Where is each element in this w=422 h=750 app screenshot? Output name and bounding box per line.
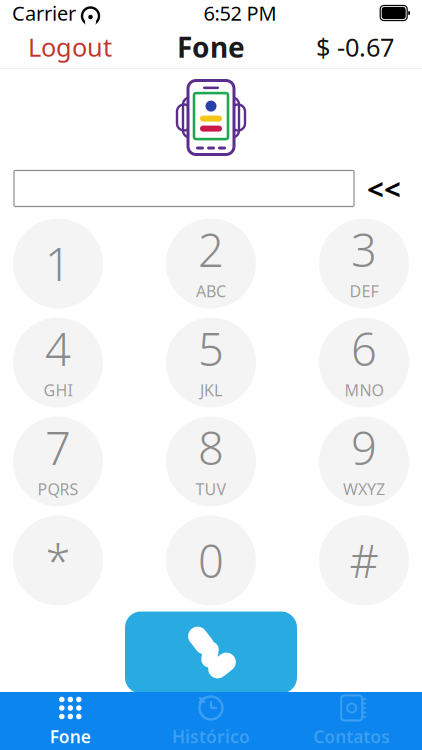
staticText: Fone (50, 725, 91, 748)
staticText: 9 (351, 417, 377, 477)
staticText: MNO (344, 379, 383, 401)
button[interactable]: * (13, 515, 103, 605)
staticText: Carrier (12, 0, 76, 26)
staticText: Contatos (313, 725, 390, 748)
staticText: 2 (198, 219, 224, 279)
staticText: TUV (195, 478, 226, 500)
button[interactable]: Contatos (281, 692, 422, 750)
staticText: 1 (45, 233, 71, 294)
button[interactable]: 3 (319, 218, 409, 308)
button[interactable]: 4 (13, 317, 103, 407)
button[interactable]: Backspace (354, 168, 414, 208)
button[interactable]: Call (125, 611, 297, 693)
staticText: # (349, 530, 378, 591)
button[interactable]: 7 (13, 416, 103, 506)
staticText: GHI (43, 379, 72, 401)
staticText: 5 (198, 318, 224, 378)
staticText: 4 (45, 318, 71, 378)
staticText: PQRS (37, 478, 78, 500)
button[interactable]: 8 (166, 416, 256, 506)
staticText: DEF (349, 280, 378, 302)
button[interactable]: 0 (166, 515, 256, 605)
staticText: 8 (198, 417, 224, 477)
button[interactable]: # (319, 515, 409, 605)
staticText: WXYZ (343, 478, 385, 500)
button[interactable]: $ -0.67 (306, 24, 404, 70)
staticText: 0 (198, 530, 224, 591)
button[interactable]: 5 (166, 317, 256, 407)
button[interactable]: 2 (166, 218, 256, 308)
staticText: 7 (45, 417, 71, 477)
button[interactable]: 6 (319, 317, 409, 407)
staticText: Logout (28, 30, 112, 64)
staticText: << (367, 169, 401, 208)
button[interactable]: 9 (319, 416, 409, 506)
staticText: Fone (177, 28, 245, 66)
button[interactable]: Histórico (141, 692, 281, 750)
staticText: ABC (196, 280, 226, 302)
button[interactable]: 1 (13, 218, 103, 308)
staticText: 6:52 PM (204, 0, 277, 26)
button[interactable]: Fone (0, 692, 141, 750)
button[interactable]: Logout (18, 24, 122, 70)
staticText: $ -0.67 (316, 30, 394, 64)
staticText: * (45, 530, 70, 591)
staticText: JKL (200, 379, 222, 401)
staticText: 3 (351, 219, 377, 279)
staticText: Histórico (172, 725, 250, 748)
staticText: 6 (351, 318, 377, 378)
